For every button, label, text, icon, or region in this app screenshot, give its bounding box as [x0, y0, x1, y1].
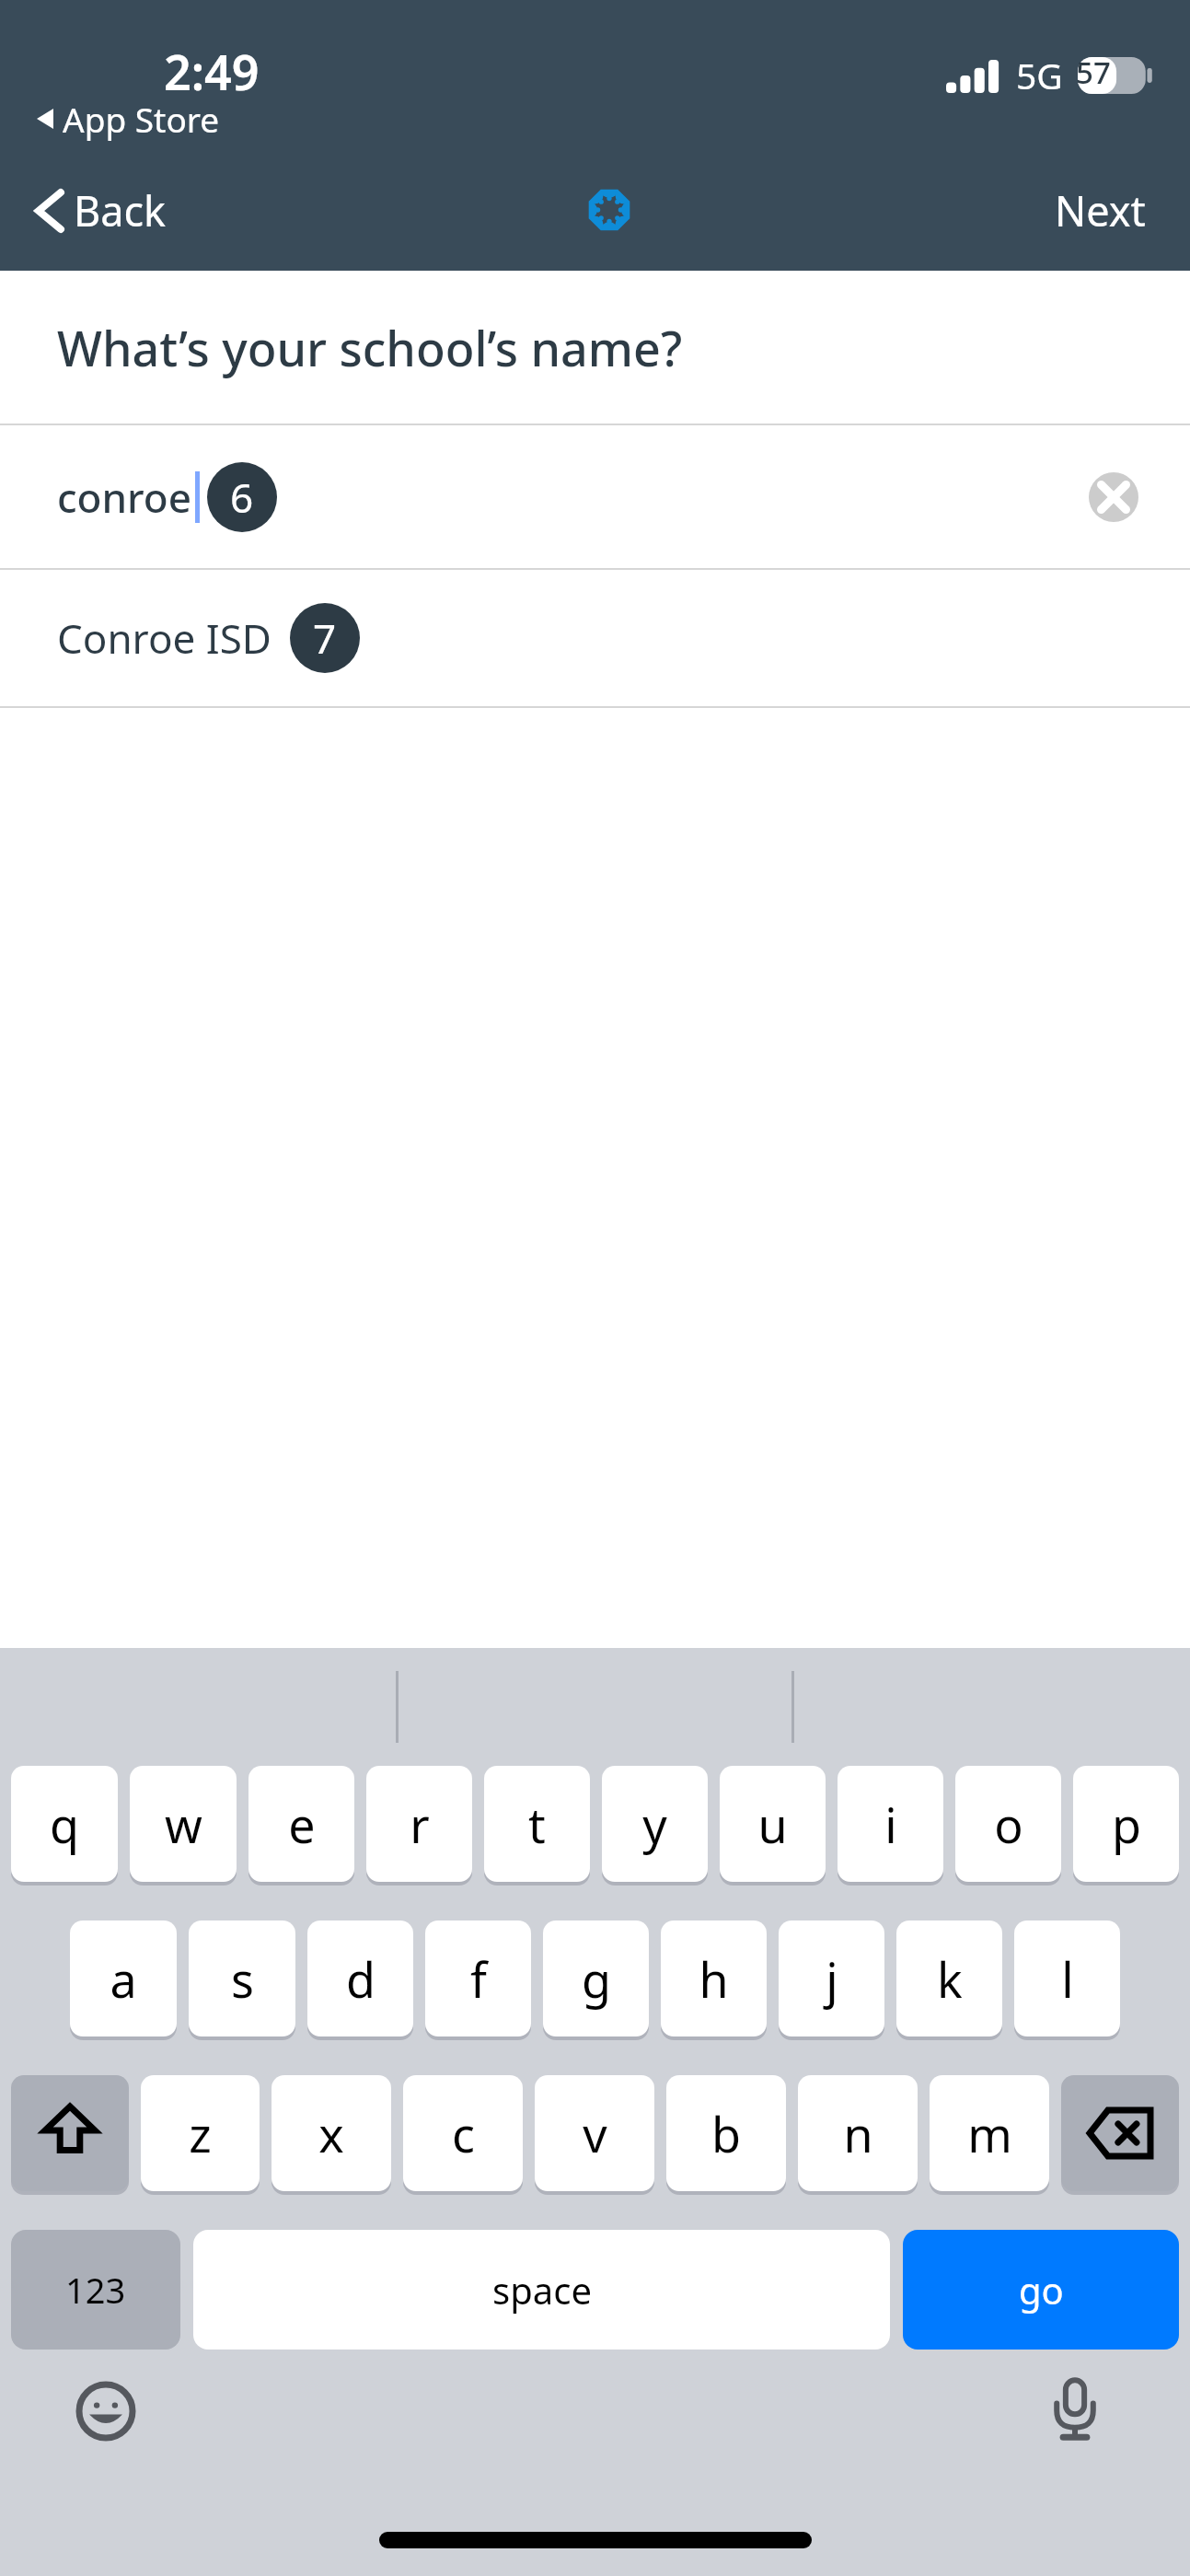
button[interactable]: n [798, 2075, 918, 2191]
staticText: x [318, 2101, 344, 2166]
staticText: 57 [1076, 52, 1111, 93]
button[interactable]: b [666, 2075, 786, 2191]
button[interactable]: 123 [11, 2230, 180, 2350]
button[interactable]: d [307, 1920, 413, 2036]
staticText: b [711, 2101, 741, 2166]
button[interactable]: w [130, 1766, 237, 1882]
button[interactable]: p [1073, 1766, 1179, 1882]
button[interactable]: c [403, 2075, 523, 2191]
staticText: Conroe ISD [57, 610, 272, 666]
staticText: w [165, 1792, 202, 1857]
button[interactable]: Backspace [1061, 2075, 1179, 2191]
staticText: i [884, 1792, 897, 1857]
button[interactable]: y [602, 1766, 708, 1882]
staticText: o [994, 1792, 1023, 1857]
button[interactable]: Emoji [72, 2377, 140, 2445]
staticText: p [1112, 1792, 1141, 1857]
staticText: App Store [63, 96, 220, 142]
button[interactable]: e [248, 1766, 354, 1882]
button[interactable]: j [779, 1920, 884, 2036]
button[interactable]: Back [31, 175, 172, 246]
button[interactable]: Dictate [1041, 2375, 1109, 2443]
staticText: t [528, 1792, 546, 1857]
button[interactable]: h [661, 1920, 767, 2036]
button[interactable]: Next [1047, 175, 1153, 246]
staticText: 7 [313, 610, 337, 666]
staticText: k [937, 1946, 963, 2012]
staticText: Back [74, 182, 167, 238]
button[interactable]: g [543, 1920, 649, 2036]
button[interactable]: r [366, 1766, 472, 1882]
staticText: space [492, 2265, 592, 2315]
button[interactable]: x [272, 2075, 391, 2191]
staticText: s [231, 1946, 254, 2012]
button[interactable]: t [484, 1766, 590, 1882]
staticText: a [110, 1946, 137, 2012]
button[interactable]: u [720, 1766, 826, 1882]
button[interactable]: App Store [37, 96, 220, 142]
button[interactable]: Conroe ISD [0, 570, 1190, 706]
button[interactable]: v [535, 2075, 654, 2191]
button[interactable]: conroe [0, 425, 1190, 568]
button[interactable]: a [70, 1920, 177, 2036]
button[interactable]: z [141, 2075, 260, 2191]
staticText: q [50, 1792, 79, 1857]
staticText: f [470, 1946, 487, 2012]
staticText: 2:49 [164, 39, 260, 104]
staticText: r [410, 1792, 430, 1857]
button[interactable]: space [193, 2230, 890, 2350]
button[interactable]: Canvas logo [577, 178, 641, 242]
staticText: u [757, 1792, 788, 1857]
staticText: 123 [65, 2266, 126, 2314]
staticText: z [189, 2101, 212, 2166]
staticText: g [582, 1946, 611, 2012]
staticText: 5G [1016, 51, 1063, 99]
staticText: v [583, 2101, 607, 2166]
button[interactable]: o [955, 1766, 1061, 1882]
staticText: Next [1055, 182, 1146, 238]
button[interactable]: f [425, 1920, 531, 2036]
staticText: j [826, 1946, 838, 2012]
staticText: conroe [57, 470, 191, 525]
staticText: What’s your school’s name? [57, 315, 683, 380]
button[interactable]: k [896, 1920, 1002, 2036]
button[interactable]: i [838, 1766, 943, 1882]
staticText: c [452, 2101, 475, 2166]
staticText: e [288, 1792, 316, 1857]
button[interactable]: m [930, 2075, 1049, 2191]
button[interactable]: s [189, 1920, 295, 2036]
staticText: go [1019, 2265, 1064, 2315]
staticText: h [699, 1946, 729, 2012]
button[interactable]: l [1014, 1920, 1120, 2036]
staticText: m [967, 2101, 1012, 2166]
button[interactable]: Clear text [1085, 469, 1142, 526]
staticText: y [642, 1792, 667, 1857]
button[interactable]: go [903, 2230, 1179, 2350]
staticText: d [346, 1946, 375, 2012]
staticText: n [843, 2101, 873, 2166]
button[interactable]: Shift [11, 2075, 129, 2191]
staticText: 6 [230, 470, 254, 525]
button[interactable]: q [11, 1766, 118, 1882]
staticText: l [1061, 1946, 1074, 2012]
